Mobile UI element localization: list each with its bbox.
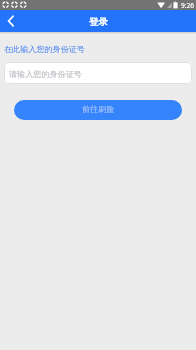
button[interactable]: 请输入您的身份证号: [4, 62, 192, 84]
staticText: 在此输入您的身份证号: [4, 44, 85, 54]
button[interactable]: [0, 10, 22, 32]
button[interactable]: 前往刷脸: [14, 100, 182, 120]
staticText: 请输入您的身份证号: [9, 69, 82, 79]
staticText: 前往刷脸: [82, 104, 115, 114]
staticText: 登录: [89, 16, 108, 28]
staticText: 9:26: [181, 1, 194, 10]
